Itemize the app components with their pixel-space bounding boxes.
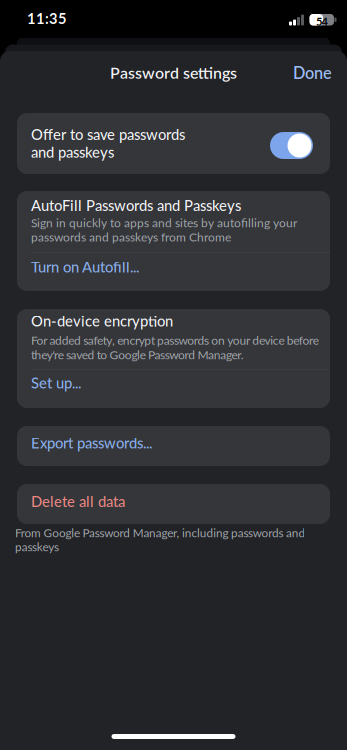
staticText: AutoFill Passwords and Passkeys — [31, 196, 241, 214]
staticText: Offer to save passwords and passkeys — [31, 125, 185, 161]
staticText: Set up... — [31, 374, 81, 392]
button[interactable]: Export passwords... — [17, 426, 330, 466]
button[interactable]: Offer to save passwords and passkeys — [270, 132, 313, 159]
staticText: Sign in quickly to apps and sites by aut… — [31, 215, 297, 244]
staticText: Turn on Autofill... — [31, 258, 139, 276]
staticText: 11:35 — [27, 9, 67, 27]
staticText: Done — [293, 63, 332, 82]
staticText: From Google Password Manager, including … — [15, 526, 305, 554]
staticText: Password settings — [110, 63, 237, 82]
staticText: Export passwords... — [31, 434, 152, 452]
staticText: For added safety, encrypt passwords on y… — [31, 333, 319, 362]
staticText: 54 — [316, 15, 328, 28]
staticText: Delete all data — [31, 492, 125, 510]
button[interactable]: Done — [293, 63, 332, 82]
button[interactable]: Delete all data — [17, 484, 330, 524]
button[interactable]: Set up... — [17, 369, 330, 408]
button[interactable]: Turn on Autofill... — [17, 252, 330, 291]
staticText: On-device encryption — [31, 312, 173, 330]
